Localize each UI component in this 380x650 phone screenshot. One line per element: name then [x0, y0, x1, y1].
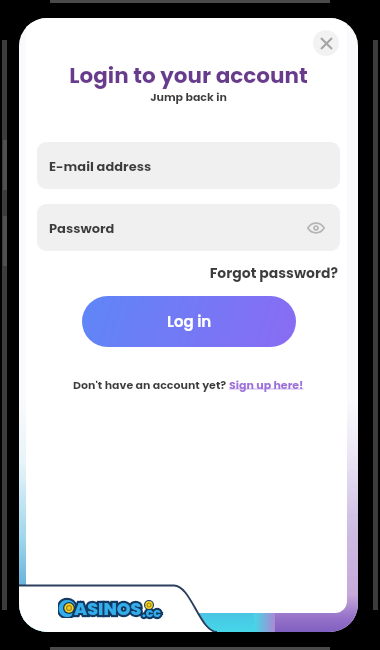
- staticText: ASINOS: [74, 597, 142, 622]
- button[interactable]: Sign up here!: [229, 377, 304, 392]
- button[interactable]: Forgot password?: [19, 263, 338, 283]
- staticText: Don't have an account yet?: [73, 377, 229, 392]
- staticText: C: [58, 592, 77, 618]
- button[interactable]: Show password: [306, 218, 326, 238]
- staticText: Log in: [167, 311, 212, 332]
- staticText: E-mail address: [49, 157, 152, 175]
- staticText: .cc: [142, 604, 161, 621]
- staticText: C: [58, 592, 77, 618]
- staticText: Jump back in: [19, 89, 358, 104]
- staticText: Password: [49, 219, 115, 237]
- staticText: .cc: [142, 604, 161, 621]
- button[interactable]: Log in: [82, 296, 296, 347]
- button[interactable]: E-mail address: [37, 142, 340, 189]
- staticText: Login to your account: [19, 60, 358, 90]
- button[interactable]: Password: [37, 204, 340, 251]
- button[interactable]: Close: [313, 30, 339, 56]
- staticText: ASINOS: [74, 597, 142, 622]
- button[interactable]: Casinos.cc: [58, 596, 162, 622]
